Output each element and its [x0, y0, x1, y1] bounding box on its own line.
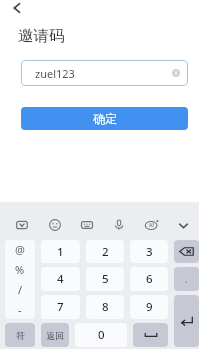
button[interactable]: 确定 — [21, 107, 188, 130]
staticText: . — [185, 273, 188, 285]
button[interactable]: 1 — [41, 240, 80, 263]
button[interactable]: Hide keyboard — [167, 212, 199, 238]
staticText: 0 — [98, 327, 105, 343]
button[interactable]: Clear text — [169, 66, 183, 80]
button[interactable]: 4 — [41, 267, 80, 291]
button[interactable]: zuel123 — [21, 60, 188, 86]
button[interactable]: - — [5, 299, 35, 319]
button[interactable]: Emoji — [38, 212, 71, 238]
button[interactable]: 5 — [86, 267, 124, 291]
staticText: @ — [15, 242, 25, 257]
staticText: 9 — [146, 299, 153, 315]
button[interactable]: / — [5, 279, 35, 299]
staticText: 符 — [16, 330, 25, 341]
button[interactable]: @ — [5, 240, 35, 259]
button[interactable]: 7 — [41, 295, 80, 319]
button[interactable]: 9 — [130, 295, 168, 319]
staticText: 2 — [102, 244, 109, 260]
staticText: % — [15, 262, 25, 277]
staticText: zuel123 — [35, 66, 75, 81]
staticText: 1 — [57, 244, 64, 260]
staticText: - — [18, 302, 22, 317]
button[interactable]: Space — [133, 323, 168, 347]
staticText: 4 — [57, 271, 64, 287]
button[interactable]: Voice input — [103, 212, 135, 238]
button[interactable]: % — [5, 259, 35, 279]
button[interactable]: Enter — [174, 295, 199, 347]
button[interactable]: 2 — [86, 240, 124, 263]
button[interactable]: Switch input method — [5, 212, 38, 238]
staticText: 确定 — [93, 111, 117, 126]
button[interactable]: Backspace — [174, 240, 199, 263]
button[interactable]: 3 — [130, 240, 168, 263]
button[interactable]: . — [174, 267, 199, 291]
button[interactable]: 返回 — [41, 323, 69, 347]
button[interactable]: 0 — [75, 323, 127, 347]
button[interactable]: Back — [7, 0, 27, 18]
button[interactable]: 6 — [130, 267, 168, 291]
staticText: 邀请码 — [18, 26, 65, 46]
staticText: / — [18, 282, 23, 297]
staticText: 7 — [57, 299, 64, 315]
button[interactable]: 符 — [5, 323, 35, 347]
staticText: AI — [149, 222, 155, 229]
button[interactable]: Keyboard layout — [71, 212, 103, 238]
staticText: 3 — [146, 244, 153, 260]
button[interactable]: 8 — [86, 295, 124, 319]
staticText: 5 — [102, 271, 109, 287]
staticText: 返回 — [46, 330, 64, 341]
button[interactable]: AI assistant — [135, 212, 167, 238]
staticText: 6 — [146, 271, 153, 287]
staticText: 8 — [102, 299, 109, 315]
